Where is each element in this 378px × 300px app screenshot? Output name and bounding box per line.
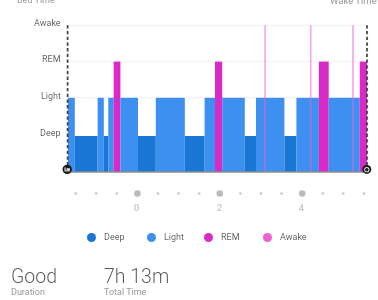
- staticText: Bed Time: [17, 0, 55, 6]
- staticText: Awake: [280, 232, 307, 243]
- staticText: REM: [42, 54, 61, 65]
- staticText: 0: [134, 203, 140, 214]
- staticText: Light: [41, 91, 61, 102]
- staticText: 4: [299, 203, 305, 214]
- staticText: REM: [221, 232, 240, 243]
- staticText: Duration: [11, 287, 45, 298]
- button[interactable]: REM: [204, 232, 240, 243]
- staticText: Total Time: [104, 287, 147, 298]
- staticText: Deep: [40, 128, 61, 139]
- staticText: Good: [11, 265, 58, 288]
- button[interactable]: Awake: [263, 232, 307, 243]
- staticText: Awake: [34, 18, 61, 29]
- staticText: 7h 13m: [104, 265, 170, 288]
- staticText: Wake Time: [330, 0, 377, 6]
- button[interactable]: Deep: [87, 232, 125, 243]
- button[interactable]: Light: [147, 232, 184, 243]
- staticText: Deep: [104, 232, 125, 243]
- staticText: Light: [164, 232, 184, 243]
- staticText: 2: [217, 203, 223, 214]
